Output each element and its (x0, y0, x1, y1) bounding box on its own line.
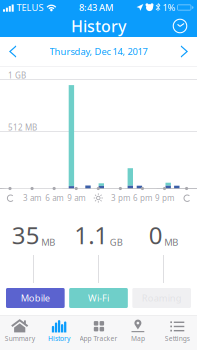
staticText: MB (164, 236, 178, 248)
button[interactable]: Wi-Fi data (69, 288, 128, 308)
staticText: Thursday, Dec 14, 2017 (49, 45, 147, 58)
button[interactable]: Recent (165, 15, 197, 37)
button[interactable]: History (39, 315, 79, 350)
staticText: 8:43 AM (79, 1, 114, 14)
staticText: Mobile (21, 292, 50, 304)
staticText: 9 pm (155, 193, 174, 203)
staticText: MB (41, 236, 55, 248)
staticText: Roaming (142, 292, 182, 304)
button[interactable]: App Tracker (79, 315, 118, 350)
staticText: History (71, 15, 126, 37)
staticText: 6 pm (133, 193, 152, 203)
staticText: Wi-Fi (88, 292, 109, 304)
staticText: History (48, 334, 70, 343)
staticText: TELUS (16, 1, 43, 14)
staticText: 3 pm (111, 193, 130, 203)
staticText: Map (131, 334, 145, 343)
staticText: 1% (162, 1, 175, 14)
staticText: GB (110, 236, 123, 248)
staticText: Summary (5, 334, 35, 343)
staticText: 512 MB (8, 122, 37, 133)
staticText: 6 am (45, 193, 63, 203)
button[interactable]: Next day (167, 39, 197, 63)
button[interactable]: Settings (158, 315, 197, 350)
staticText: 35 (12, 219, 40, 251)
staticText: 9 am (67, 193, 85, 203)
staticText: Settings (165, 334, 190, 343)
button[interactable]: Map (118, 315, 158, 350)
staticText: 1 GB (8, 70, 26, 81)
staticText: App Tracker (79, 334, 117, 343)
button[interactable]: Previous day (0, 39, 30, 63)
staticText: 3 am (23, 193, 41, 203)
staticText: 1.1 (74, 219, 108, 251)
staticText: 0 (149, 219, 163, 251)
button[interactable]: Mobile data (6, 288, 65, 308)
button[interactable]: Summary (0, 315, 39, 350)
